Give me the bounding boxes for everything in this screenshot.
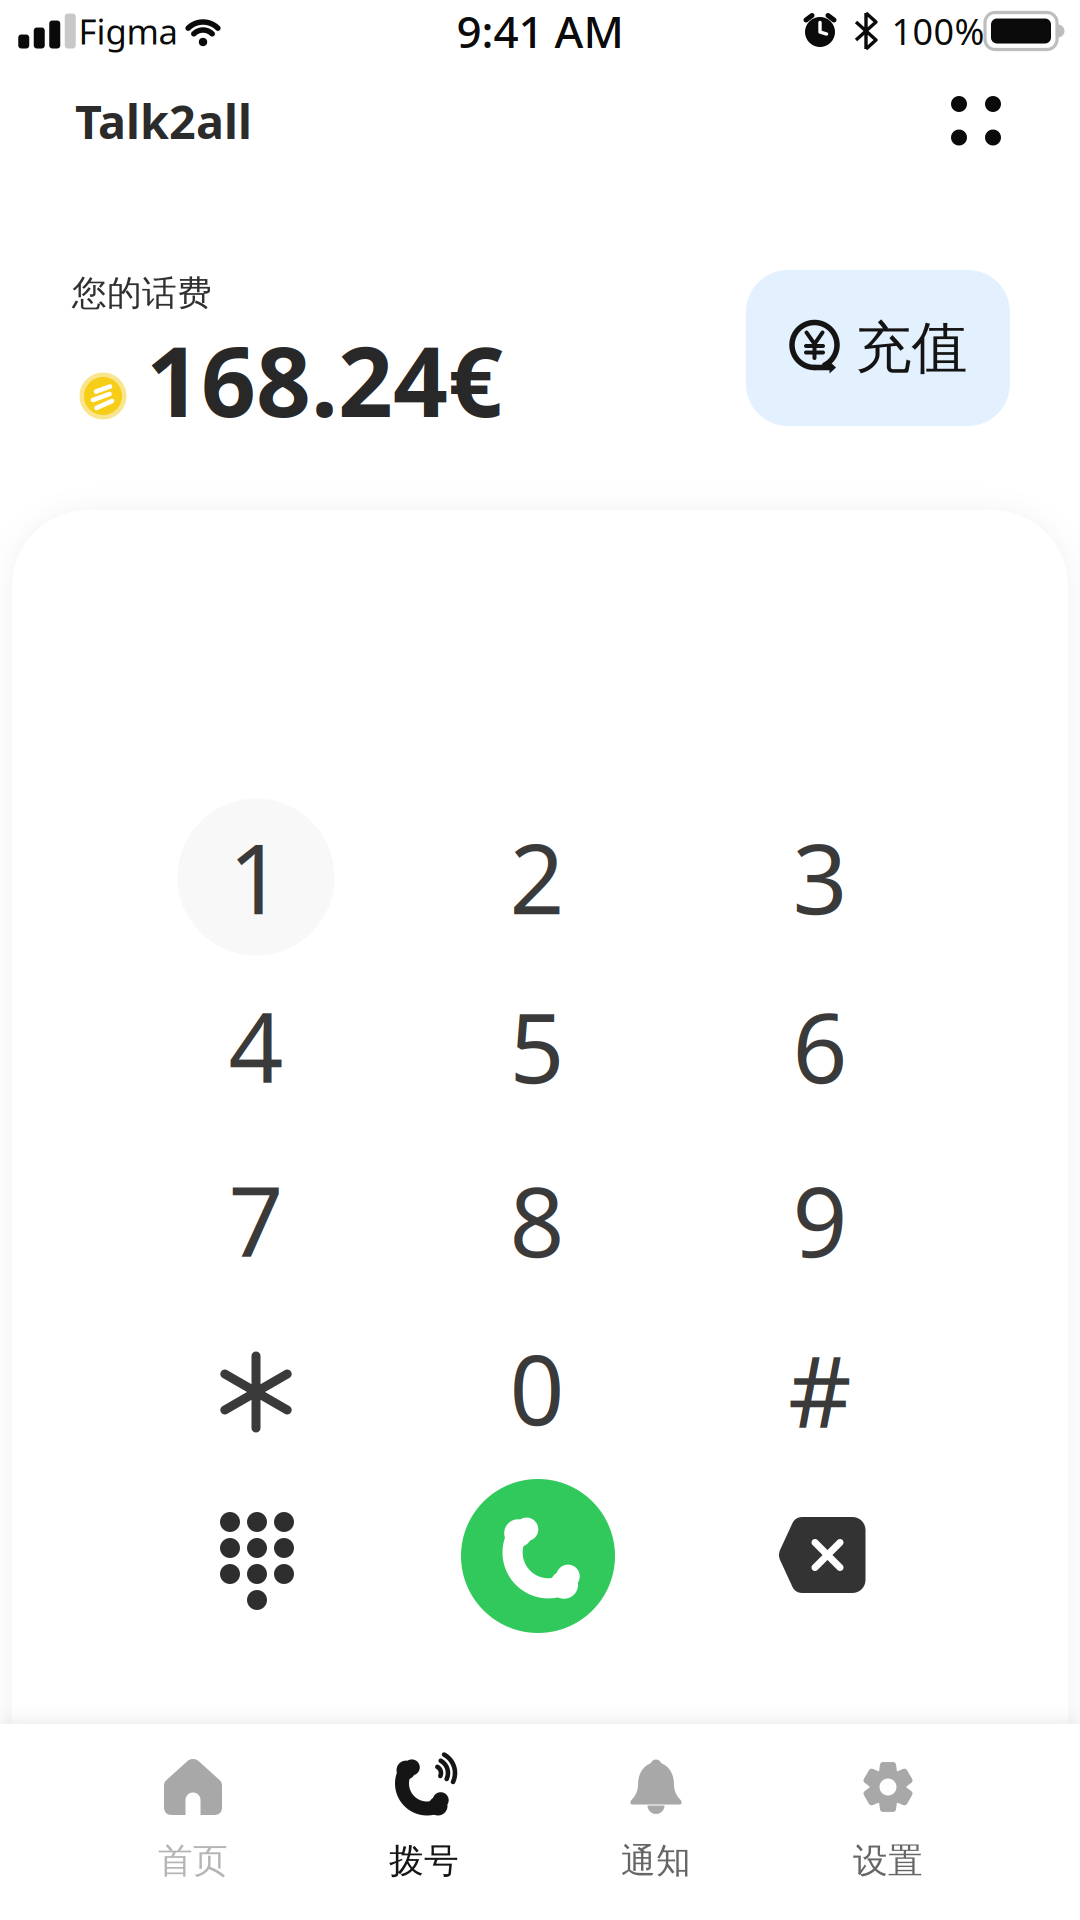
button[interactable]: 5 — [458, 967, 616, 1125]
staticText: 8 — [509, 1156, 564, 1284]
button[interactable]: Star — [177, 1313, 335, 1471]
staticText: 通知 — [621, 1840, 691, 1882]
button[interactable]: 2 — [458, 798, 616, 956]
staticText: 100% — [891, 7, 984, 55]
button[interactable]: Show dialpad — [197, 1501, 317, 1621]
button[interactable]: 7 — [177, 1141, 335, 1299]
staticText: 3 — [792, 813, 847, 941]
staticText: 4 — [228, 982, 283, 1110]
staticText: 7 — [228, 1156, 283, 1284]
staticText: 设置 — [853, 1840, 923, 1882]
staticText: 拨号 — [389, 1840, 459, 1882]
button[interactable]: Home — [103, 1745, 283, 1885]
staticText: Talk2all — [75, 90, 252, 152]
button[interactable]: Call — [461, 1479, 615, 1633]
button[interactable]: 充值 — [746, 270, 1010, 426]
staticText: 9:41 AM — [456, 2, 623, 60]
button[interactable]: 3 — [741, 798, 899, 956]
staticText: 9 — [792, 1156, 847, 1284]
staticText: 您的话费 — [72, 272, 212, 315]
button[interactable]: 1 — [177, 798, 335, 956]
staticText: 5 — [509, 982, 564, 1110]
staticText: 6 — [792, 982, 847, 1110]
staticText: # — [788, 1324, 852, 1455]
staticText: Figma — [78, 8, 177, 54]
button[interactable]: 9 — [741, 1141, 899, 1299]
button[interactable]: Delete — [778, 1517, 865, 1593]
button[interactable]: Notifications — [566, 1745, 746, 1885]
button[interactable]: 8 — [458, 1141, 616, 1299]
staticText: 168.24€ — [146, 316, 503, 443]
button[interactable]: 6 — [741, 967, 899, 1125]
button[interactable]: Menu — [931, 76, 1021, 166]
staticText: 首页 — [158, 1840, 228, 1882]
button[interactable]: Settings — [798, 1745, 978, 1885]
staticText: 0 — [509, 1324, 564, 1452]
staticText: 2 — [509, 813, 564, 941]
button[interactable]: 0 — [458, 1309, 616, 1467]
button[interactable]: Dial — [334, 1745, 514, 1885]
staticText: 充值 — [855, 314, 967, 382]
button[interactable]: 4 — [177, 967, 335, 1125]
button[interactable]: # — [741, 1311, 899, 1469]
staticText: 1 — [228, 813, 283, 941]
